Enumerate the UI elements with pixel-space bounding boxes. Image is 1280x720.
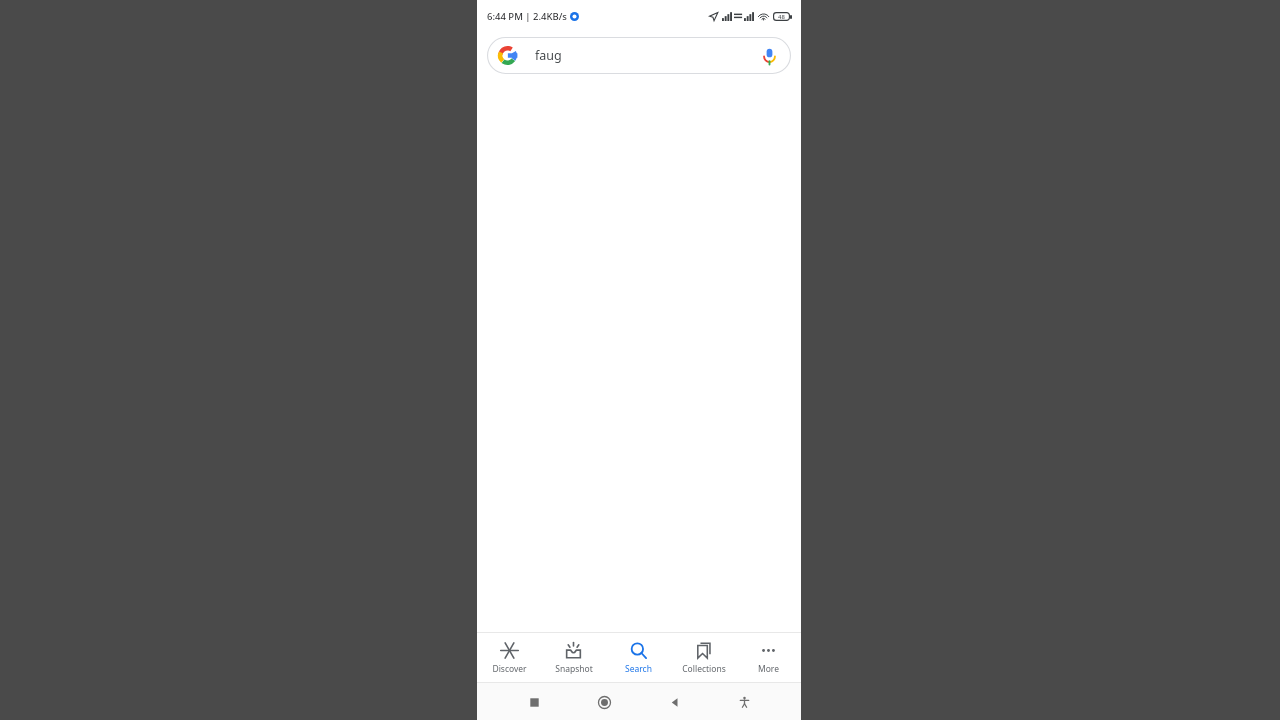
button[interactable]: More [736, 633, 801, 682]
button[interactable]: Accessibility [727, 685, 761, 719]
button[interactable]: Collections [671, 633, 736, 682]
staticText: More [758, 663, 779, 675]
staticText: Search [625, 663, 652, 675]
button[interactable]: Back [657, 685, 691, 719]
button[interactable]: Discover [477, 633, 541, 682]
staticText: Collections [682, 663, 726, 675]
staticText: faug [535, 47, 562, 64]
staticText: 6:44 PM | 2.4KB/s [487, 10, 567, 23]
button[interactable]: faug [487, 37, 791, 74]
button[interactable]: Search [606, 633, 671, 682]
button[interactable]: Recent apps [517, 685, 551, 719]
button[interactable]: Home [587, 685, 621, 719]
staticText: Snapshot [555, 663, 593, 675]
button[interactable]: Voice search [758, 45, 780, 67]
button[interactable]: Snapshot [541, 633, 606, 682]
staticText: Discover [492, 663, 527, 675]
staticText: 48 [778, 13, 785, 21]
